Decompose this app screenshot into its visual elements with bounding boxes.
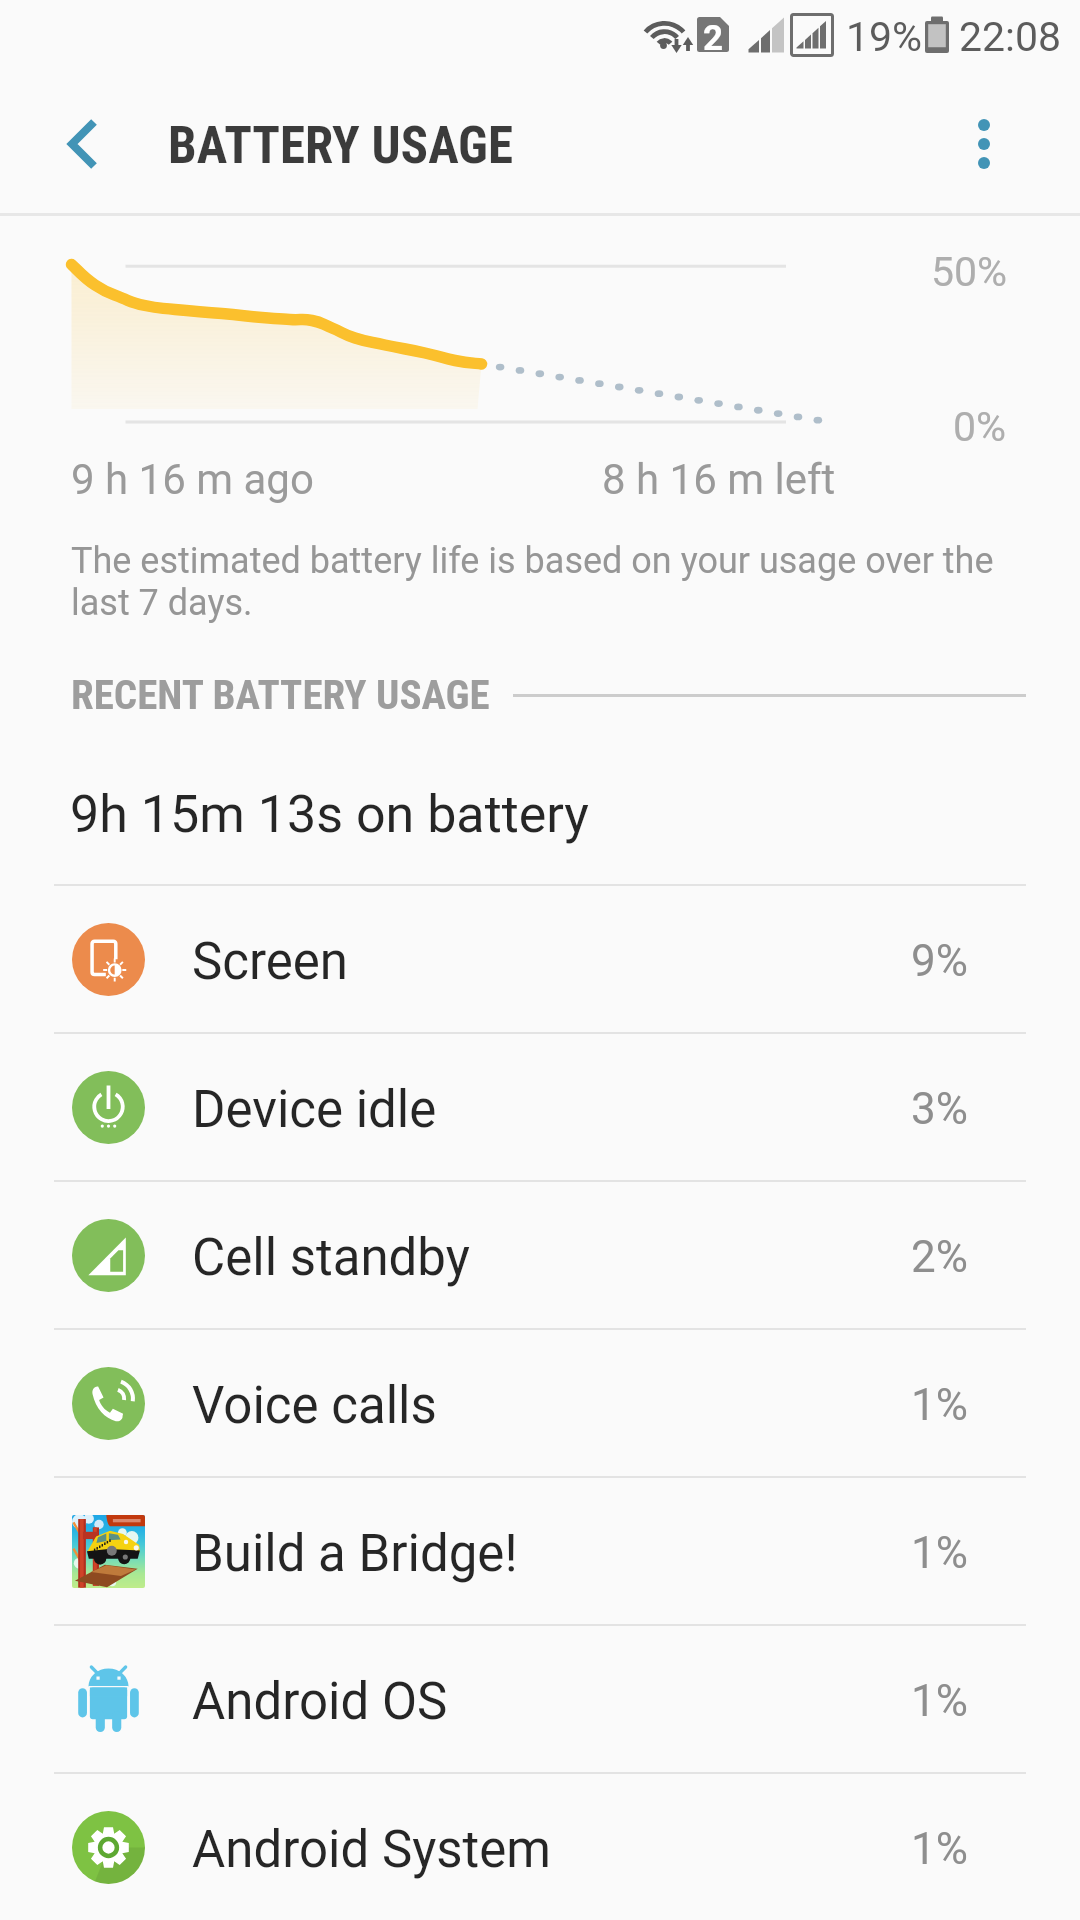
staticText: 1%: [911, 1379, 968, 1431]
button[interactable]: Device idle: [0, 1034, 1080, 1180]
button[interactable]: Cell standby: [0, 1182, 1080, 1328]
staticText: The estimated battery life is based on y…: [71, 540, 1016, 624]
staticText: 50%: [931, 248, 1008, 296]
staticText: 0%: [953, 403, 1007, 451]
staticText: Cell standby: [192, 1228, 470, 1288]
button[interactable]: Screen: [0, 886, 1080, 1032]
staticText: RECENT BATTERY USAGE: [71, 671, 490, 719]
staticText: Build a Bridge!: [192, 1524, 518, 1584]
staticText: 1%: [911, 1823, 968, 1875]
button[interactable]: Navigate up: [46, 110, 114, 178]
staticText: 9 h 16 m ago: [71, 455, 314, 504]
button[interactable]: Android System: [0, 1774, 1080, 1920]
staticText: 1%: [911, 1527, 968, 1579]
staticText: Device idle: [192, 1080, 437, 1140]
staticText: 9h 15m 13s on battery: [70, 784, 589, 845]
staticText: 2%: [911, 1231, 968, 1283]
button[interactable]: Build a Bridge!: [0, 1478, 1080, 1624]
staticText: 22:08: [959, 13, 1062, 61]
staticText: 9%: [911, 935, 968, 987]
staticText: Screen: [192, 932, 349, 992]
button[interactable]: More options: [952, 110, 1020, 178]
staticText: 8 h 16 m left: [602, 455, 836, 504]
staticText: 1%: [911, 1675, 968, 1727]
button[interactable]: Voice calls: [0, 1330, 1080, 1476]
staticText: 2: [703, 18, 724, 59]
staticText: Android OS: [192, 1672, 448, 1732]
staticText: Voice calls: [192, 1376, 437, 1436]
staticText: 19%: [846, 13, 923, 61]
button[interactable]: Android OS: [0, 1626, 1080, 1772]
staticText: BATTERY USAGE: [168, 116, 513, 176]
staticText: 3%: [911, 1083, 968, 1135]
staticText: Android System: [192, 1820, 552, 1880]
